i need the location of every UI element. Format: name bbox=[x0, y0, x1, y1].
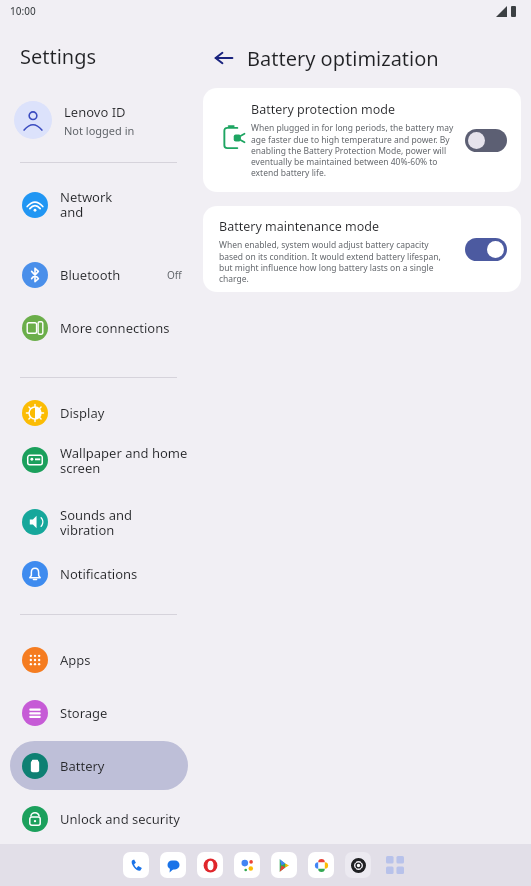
button[interactable]: Assistant bbox=[234, 852, 260, 878]
staticText: Settings bbox=[20, 43, 97, 70]
staticText: Display bbox=[60, 404, 188, 422]
button[interactable]: Toggle on bbox=[465, 238, 507, 261]
staticText: Storage bbox=[60, 704, 188, 722]
button[interactable]: More connections bbox=[10, 311, 188, 345]
staticText: Apps bbox=[60, 651, 188, 669]
button[interactable]: Phone bbox=[123, 852, 149, 878]
staticText: More connections bbox=[60, 319, 188, 337]
staticText: Wallpaper and home screen bbox=[60, 444, 188, 477]
staticText: Sounds and vibration bbox=[60, 506, 188, 539]
button[interactable]: Storage bbox=[10, 696, 188, 730]
staticText: When enabled, system would adjust batter… bbox=[219, 239, 451, 285]
button[interactable]: Network and Internet bbox=[10, 188, 188, 222]
button[interactable]: All apps bbox=[382, 852, 408, 878]
button[interactable]: Photos bbox=[308, 852, 334, 878]
button[interactable]: Play Store bbox=[271, 852, 297, 878]
button[interactable]: Toggle off bbox=[465, 129, 507, 152]
button[interactable]: Unlock and security bbox=[10, 802, 188, 836]
staticText: Battery protection mode bbox=[251, 101, 395, 118]
staticText: Network and Internet bbox=[60, 188, 188, 222]
button[interactable]: Lenovo ID bbox=[8, 96, 192, 144]
staticText: Unlock and security bbox=[60, 810, 188, 828]
staticText: 10:00 bbox=[10, 4, 36, 18]
staticText: Battery maintenance mode bbox=[219, 218, 379, 235]
staticText: Not logged in bbox=[64, 123, 135, 138]
button[interactable]: Bluetooth bbox=[10, 258, 188, 292]
staticText: Off bbox=[167, 268, 182, 282]
staticText: Bluetooth bbox=[60, 266, 167, 284]
staticText: Lenovo ID bbox=[64, 103, 126, 121]
staticText: Battery optimization bbox=[247, 45, 439, 72]
button[interactable]: Sounds and vibration bbox=[10, 505, 188, 539]
button[interactable]: Settings bbox=[345, 852, 371, 878]
button[interactable]: Notifications bbox=[10, 557, 188, 591]
button[interactable]: Apps bbox=[10, 643, 188, 677]
button[interactable]: Wallpaper and home screen bbox=[10, 443, 188, 477]
button[interactable]: Battery bbox=[10, 741, 188, 790]
button[interactable]: Opera bbox=[197, 852, 223, 878]
staticText: When plugged in for long periods, the ba… bbox=[251, 122, 456, 179]
staticText: Notifications bbox=[60, 565, 188, 583]
staticText: Battery bbox=[60, 757, 105, 775]
button[interactable]: Display bbox=[10, 396, 188, 430]
button[interactable]: Back bbox=[210, 44, 238, 72]
button[interactable]: Messages bbox=[160, 852, 186, 878]
